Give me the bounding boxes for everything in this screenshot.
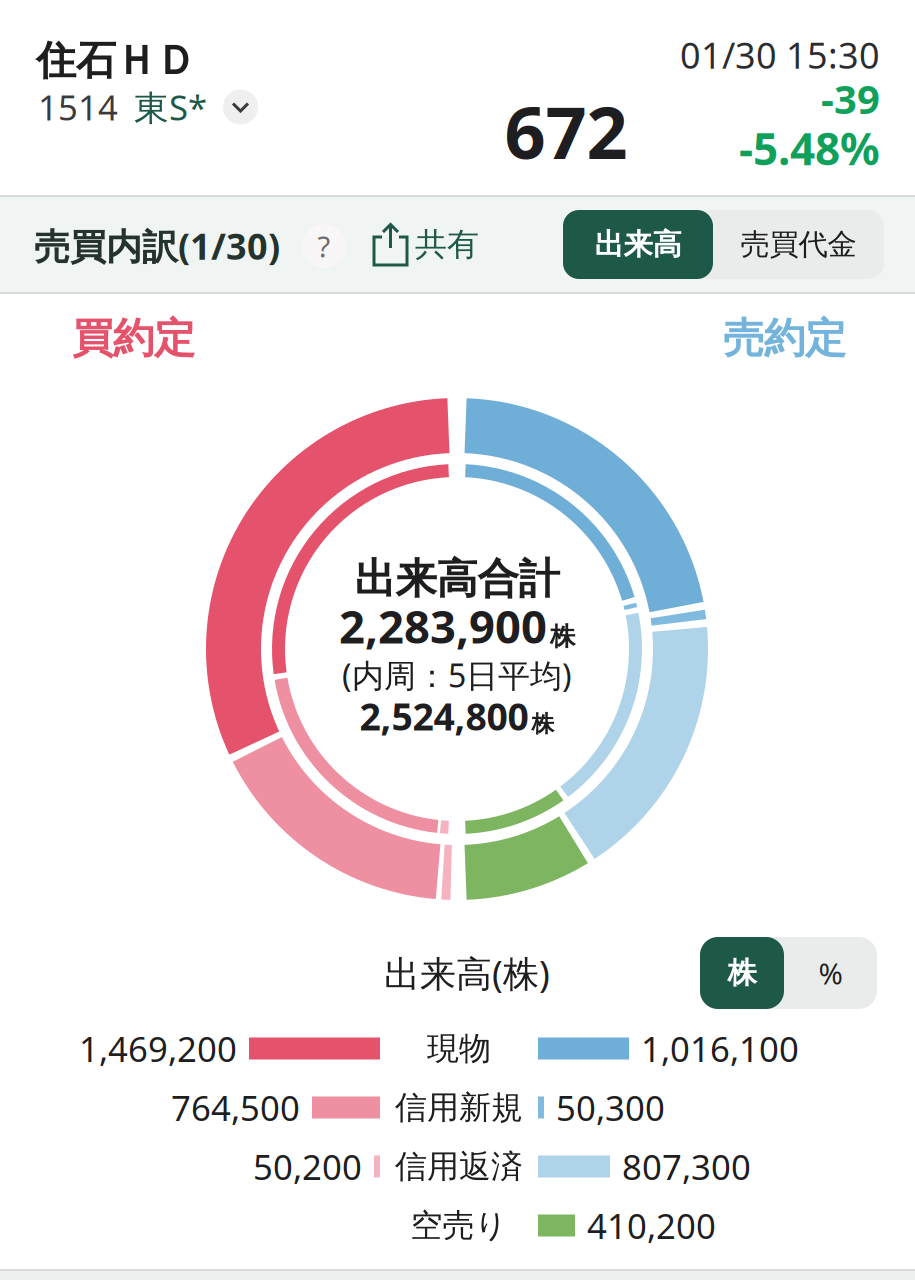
staticText: 1,016,100 (641, 1025, 799, 1071)
staticText: 東S* (134, 84, 207, 130)
button[interactable]: 共有 (372, 222, 479, 267)
staticText: 2,524,800 (359, 691, 528, 741)
staticText: 50,300 (556, 1084, 665, 1130)
staticText: (内周：5日平均) (342, 654, 572, 696)
button[interactable]: 株 (700, 937, 784, 1009)
staticText: 410,200 (587, 1202, 716, 1248)
staticText: 出来高(株) (384, 949, 550, 997)
staticText: 現物 (427, 1029, 491, 1068)
button[interactable]: 銘柄メニュー (223, 89, 258, 124)
staticText: 信用新規 (395, 1088, 523, 1127)
staticText: 807,300 (622, 1143, 751, 1189)
staticText: 1,469,200 (79, 1025, 237, 1071)
staticText: 売約定 (723, 313, 846, 364)
button[interactable]: 売買代金 (713, 210, 884, 279)
staticText: % (818, 953, 842, 992)
staticText: 出来高 (594, 226, 681, 262)
staticText: -5.48% (739, 119, 880, 177)
staticText: 01/30 15:30 (680, 31, 880, 79)
staticText: 出来高合計 (354, 554, 559, 604)
staticText: 50,200 (253, 1143, 362, 1189)
staticText: 共有 (415, 225, 479, 264)
staticText: 空売り (410, 1206, 507, 1245)
button[interactable]: ヘルプ (302, 224, 346, 268)
staticText: 株 (550, 621, 575, 652)
staticText: 売買内訳(1/30) (34, 222, 280, 270)
staticText: 株 (727, 955, 756, 991)
staticText: 買約定 (72, 313, 195, 364)
staticText: 2,283,900 (339, 596, 547, 656)
staticText: 672 (504, 83, 627, 179)
staticText: 売買代金 (740, 226, 856, 262)
staticText: 1514 (38, 84, 118, 130)
staticText: 764,500 (171, 1084, 300, 1130)
staticText: -39 (821, 72, 880, 125)
button[interactable]: 出来高 (563, 210, 713, 279)
staticText: 株 (531, 710, 554, 738)
button[interactable]: % (784, 937, 877, 1009)
staticText: ? (317, 226, 330, 265)
staticText: 住石ＨＤ (36, 36, 196, 85)
staticText: 信用返済 (395, 1147, 523, 1186)
